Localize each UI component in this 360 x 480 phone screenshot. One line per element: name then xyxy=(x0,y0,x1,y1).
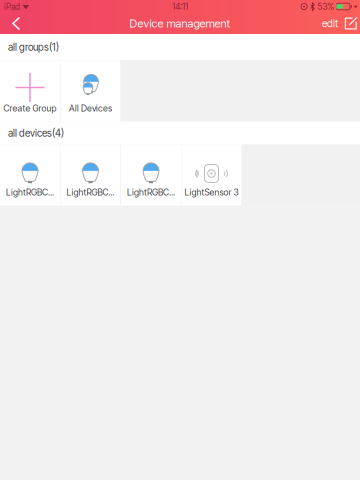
staticText: 14:11 xyxy=(172,1,188,12)
button[interactable]: edit xyxy=(322,13,360,34)
staticText: LightRGBC... xyxy=(6,187,54,197)
button[interactable]: LightRGBC... xyxy=(0,144,60,205)
staticText: LightRGBC... xyxy=(66,187,114,197)
button[interactable]: LightRGBC... xyxy=(121,144,181,205)
staticText: Create Group xyxy=(3,103,56,113)
staticText: All Devices xyxy=(69,103,112,113)
staticText: edit xyxy=(322,17,338,30)
button[interactable]: Back xyxy=(0,13,34,34)
button[interactable]: All Devices xyxy=(60,60,120,121)
button[interactable]: Create Group xyxy=(0,60,60,121)
button[interactable]: LightSensor 3 xyxy=(181,144,241,205)
staticText: all groups(1) xyxy=(8,41,59,53)
staticText: all devices(4) xyxy=(8,127,64,139)
staticText: iPad xyxy=(4,1,20,12)
staticText: LightRGBC... xyxy=(127,187,175,197)
staticText: 53% xyxy=(317,1,334,12)
staticText: LightSensor 3 xyxy=(184,187,238,197)
button[interactable]: LightRGBC... xyxy=(60,144,120,205)
staticText: Device management xyxy=(129,17,230,30)
